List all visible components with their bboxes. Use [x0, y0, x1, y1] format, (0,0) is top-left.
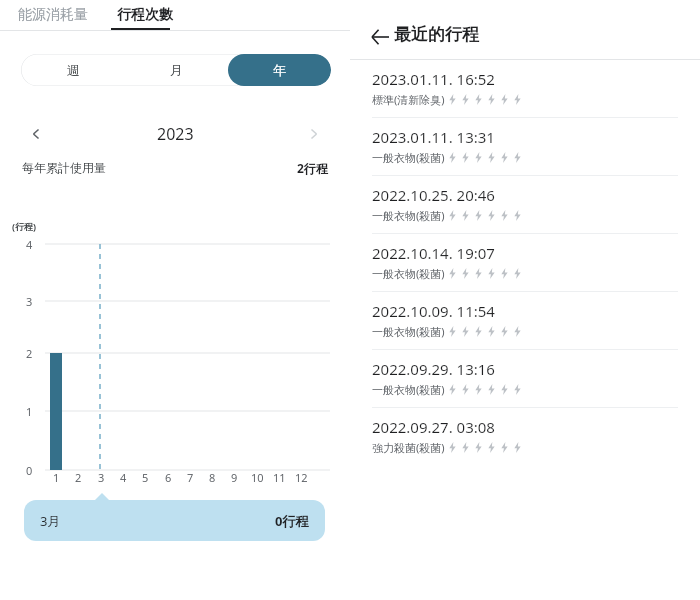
staticText: 年: [273, 62, 286, 78]
staticText: 3: [98, 470, 105, 485]
staticText: 3月: [40, 512, 61, 530]
staticText: (行程): [12, 220, 37, 232]
staticText: 強力殺菌(殺菌): [372, 440, 445, 455]
staticText: 月: [170, 62, 183, 78]
staticText: 一般衣物(殺菌): [372, 266, 445, 281]
button[interactable]: 週: [21, 54, 125, 86]
button[interactable]: 行程次數: [105, 0, 185, 30]
staticText: 8: [209, 470, 216, 485]
staticText: 一般衣物(殺菌): [372, 382, 445, 397]
staticText: 2行程: [297, 160, 328, 176]
button[interactable]: Back: [366, 23, 394, 51]
staticText: 0行程: [275, 512, 309, 530]
staticText: 3: [26, 294, 33, 309]
staticText: 每年累計使用量: [22, 160, 106, 175]
staticText: 一般衣物(殺菌): [372, 208, 445, 223]
staticText: 2022.10.09. 11:54: [372, 301, 495, 321]
staticText: 2022.10.14. 19:07: [372, 243, 495, 263]
staticText: 2: [75, 470, 82, 485]
button[interactable]: Previous year: [22, 120, 50, 148]
button[interactable]: 2022.09.29. 13:16: [350, 350, 700, 408]
staticText: 4: [26, 237, 33, 252]
staticText: 2023: [157, 123, 194, 145]
staticText: 2022.09.29. 13:16: [372, 359, 495, 379]
staticText: 2023.01.11. 16:52: [372, 69, 495, 89]
button[interactable]: 2022.10.25. 20:46: [350, 176, 700, 234]
staticText: 行程次數: [117, 6, 173, 24]
staticText: 一般衣物(殺菌): [372, 150, 445, 165]
button[interactable]: 2023.01.11. 16:52: [350, 60, 700, 118]
staticText: 一般衣物(殺菌): [372, 324, 445, 339]
staticText: 2022.10.25. 20:46: [372, 185, 495, 205]
staticText: 10: [251, 470, 264, 485]
button[interactable]: 能源消耗量: [0, 0, 105, 30]
staticText: 7: [187, 470, 194, 485]
button[interactable]: 3月: [24, 500, 325, 541]
staticText: 11: [273, 470, 286, 485]
staticText: 1: [53, 470, 60, 485]
button[interactable]: 2022.10.14. 19:07: [350, 234, 700, 292]
button[interactable]: 年: [228, 54, 331, 86]
staticText: 9: [231, 470, 238, 485]
button[interactable]: 2022.09.27. 03:08: [350, 408, 700, 466]
staticText: 1: [26, 404, 33, 419]
staticText: 2022.09.27. 03:08: [372, 417, 495, 437]
staticText: 4: [120, 470, 127, 485]
staticText: 標準(清新除臭): [372, 92, 445, 107]
button[interactable]: Next year: [300, 120, 328, 148]
staticText: 2023.01.11. 13:31: [372, 127, 495, 147]
button[interactable]: 2022.10.09. 11:54: [350, 292, 700, 350]
staticText: 2: [26, 346, 33, 361]
button[interactable]: 月: [125, 54, 228, 86]
staticText: 6: [165, 470, 172, 485]
staticText: 0: [26, 463, 33, 478]
staticText: 能源消耗量: [18, 6, 88, 24]
staticText: 週: [67, 62, 80, 78]
staticText: 最近的行程: [394, 24, 479, 45]
staticText: 5: [142, 470, 149, 485]
staticText: 12: [295, 470, 308, 485]
button[interactable]: 2023.01.11. 13:31: [350, 118, 700, 176]
